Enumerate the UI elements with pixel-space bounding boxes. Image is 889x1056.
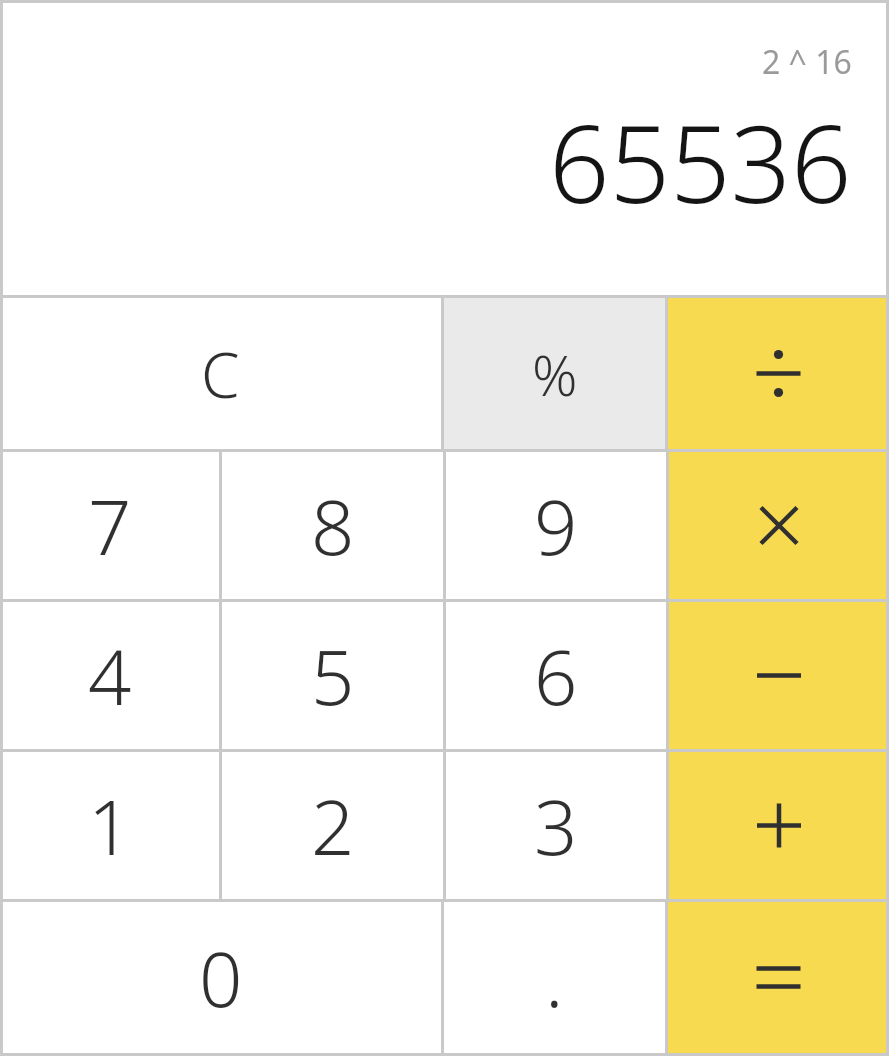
button[interactable]: 8 (222, 452, 443, 599)
staticText: 7 (88, 474, 132, 578)
button[interactable]: 2 (222, 752, 443, 899)
button[interactable]: Plus (669, 752, 889, 899)
staticText: 6 (534, 624, 578, 728)
button[interactable]: % (444, 298, 665, 449)
staticText: 4 (88, 624, 132, 728)
button[interactable]: 9 (446, 452, 666, 599)
button[interactable]: Divide (668, 298, 889, 449)
staticText: 0 (199, 926, 243, 1030)
staticText: % (532, 336, 578, 412)
staticText: 65536 (549, 90, 852, 234)
staticText: 2 (311, 774, 355, 878)
button[interactable]: Minus (669, 602, 889, 749)
staticText: 5 (311, 624, 355, 728)
staticText: . (545, 926, 564, 1030)
button[interactable]: 6 (446, 602, 666, 749)
button[interactable]: 5 (222, 602, 443, 749)
button[interactable]: 7 (0, 452, 219, 599)
button[interactable]: 0 (0, 902, 441, 1053)
staticText: C (201, 332, 240, 416)
button[interactable]: Multiply (669, 452, 889, 599)
button[interactable]: . (444, 902, 665, 1053)
button[interactable]: 4 (0, 602, 219, 749)
staticText: 3 (534, 774, 578, 878)
staticText: 2 ^ 16 (762, 40, 852, 84)
button[interactable]: Equals (668, 902, 889, 1053)
staticText: 8 (311, 474, 355, 578)
staticText: 1 (88, 774, 132, 878)
button[interactable]: 3 (446, 752, 666, 899)
staticText: 9 (534, 474, 578, 578)
button[interactable]: 1 (0, 752, 219, 899)
button[interactable]: C (0, 298, 441, 449)
